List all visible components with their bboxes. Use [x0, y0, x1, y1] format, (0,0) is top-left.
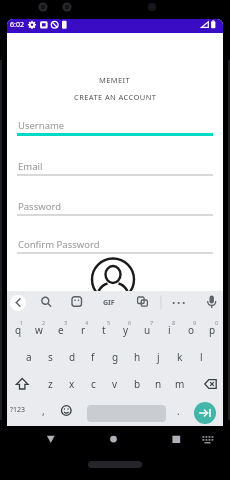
button[interactable]: y	[116, 322, 136, 338]
button[interactable]: e	[51, 322, 71, 338]
button[interactable]: g	[105, 349, 125, 365]
button[interactable]: o	[181, 322, 201, 338]
staticText: s	[48, 350, 53, 364]
button[interactable]: Email	[17, 158, 213, 176]
button[interactable]: v	[105, 376, 125, 392]
button[interactable]: Username	[17, 117, 213, 136]
staticText: g	[112, 350, 119, 364]
button[interactable]	[165, 428, 187, 450]
staticText: 9	[193, 319, 197, 326]
button[interactable]	[10, 295, 26, 311]
button[interactable]: w	[29, 322, 49, 338]
staticText: b	[134, 377, 141, 391]
staticText: k	[177, 350, 183, 364]
button[interactable]: x	[62, 376, 82, 392]
staticText: 3	[64, 319, 68, 326]
staticText: t	[102, 323, 106, 337]
staticText: Username	[18, 119, 65, 132]
staticText: 0	[215, 319, 219, 326]
staticText: q	[15, 323, 22, 337]
staticText: r	[81, 323, 86, 337]
button[interactable]: a	[19, 349, 39, 365]
staticText: z	[48, 377, 53, 391]
staticText: 1	[20, 319, 24, 326]
staticText: h	[134, 350, 141, 364]
staticText: Password	[18, 200, 61, 213]
staticText: j	[157, 350, 160, 364]
staticText: e	[58, 323, 64, 337]
staticText: p	[209, 323, 216, 337]
button[interactable]: d	[62, 349, 82, 365]
button[interactable]: z	[40, 376, 60, 392]
staticText: v	[112, 377, 118, 391]
staticText: .	[177, 404, 180, 418]
staticText: Email	[18, 160, 43, 173]
staticText: 5	[107, 319, 111, 326]
staticText: u	[144, 323, 151, 337]
staticText: GIF	[103, 298, 115, 308]
button[interactable]: k	[170, 349, 190, 365]
button[interactable]: p	[202, 322, 222, 338]
staticText: l	[200, 350, 203, 364]
button[interactable]: GIF	[99, 295, 119, 310]
button[interactable]: u	[137, 322, 157, 338]
button[interactable]: c	[83, 376, 103, 392]
staticText: 2	[42, 319, 46, 326]
staticText: Confirm Password	[18, 238, 100, 251]
staticText: c	[91, 377, 96, 391]
staticText: i	[168, 323, 171, 337]
staticText: m	[175, 377, 185, 391]
staticText: 7	[150, 319, 154, 326]
button[interactable]: l	[191, 349, 211, 365]
staticText: ?123	[10, 405, 26, 415]
staticText: ,	[42, 404, 45, 418]
staticText: y	[123, 323, 129, 337]
staticText: CREATE AN ACCOUNT	[74, 92, 157, 102]
button[interactable]: .	[171, 403, 185, 419]
staticText: o	[188, 323, 195, 337]
button[interactable]: m	[170, 376, 190, 392]
staticText: 8	[172, 319, 176, 326]
button[interactable]	[194, 402, 216, 424]
button[interactable]: h	[127, 349, 147, 365]
button[interactable]: q	[8, 322, 28, 338]
button[interactable]: s	[40, 349, 60, 365]
staticText: 6	[128, 319, 132, 326]
staticText: d	[69, 350, 76, 364]
button[interactable]: b	[127, 376, 147, 392]
staticText: f	[91, 350, 95, 364]
staticText: MEMEIT	[99, 75, 131, 85]
staticText: 6:02	[10, 20, 24, 30]
button[interactable]: i	[159, 322, 179, 338]
button[interactable]: ,	[36, 403, 50, 419]
staticText: a	[26, 350, 32, 364]
staticText: w	[35, 323, 43, 337]
button[interactable]	[102, 428, 124, 450]
button[interactable]: t	[94, 322, 114, 338]
button[interactable]: f	[83, 349, 103, 365]
button[interactable]: n	[148, 376, 168, 392]
button[interactable]: ?123	[7, 403, 28, 417]
button[interactable]: Password	[17, 198, 213, 216]
staticText: x	[69, 377, 75, 391]
button[interactable]: Confirm Password	[17, 236, 213, 254]
button[interactable]: j	[148, 349, 168, 365]
button[interactable]	[40, 428, 62, 450]
staticText: 4	[85, 319, 89, 326]
button[interactable]	[199, 428, 217, 450]
staticText: n	[155, 377, 162, 391]
button[interactable]: r	[73, 322, 93, 338]
